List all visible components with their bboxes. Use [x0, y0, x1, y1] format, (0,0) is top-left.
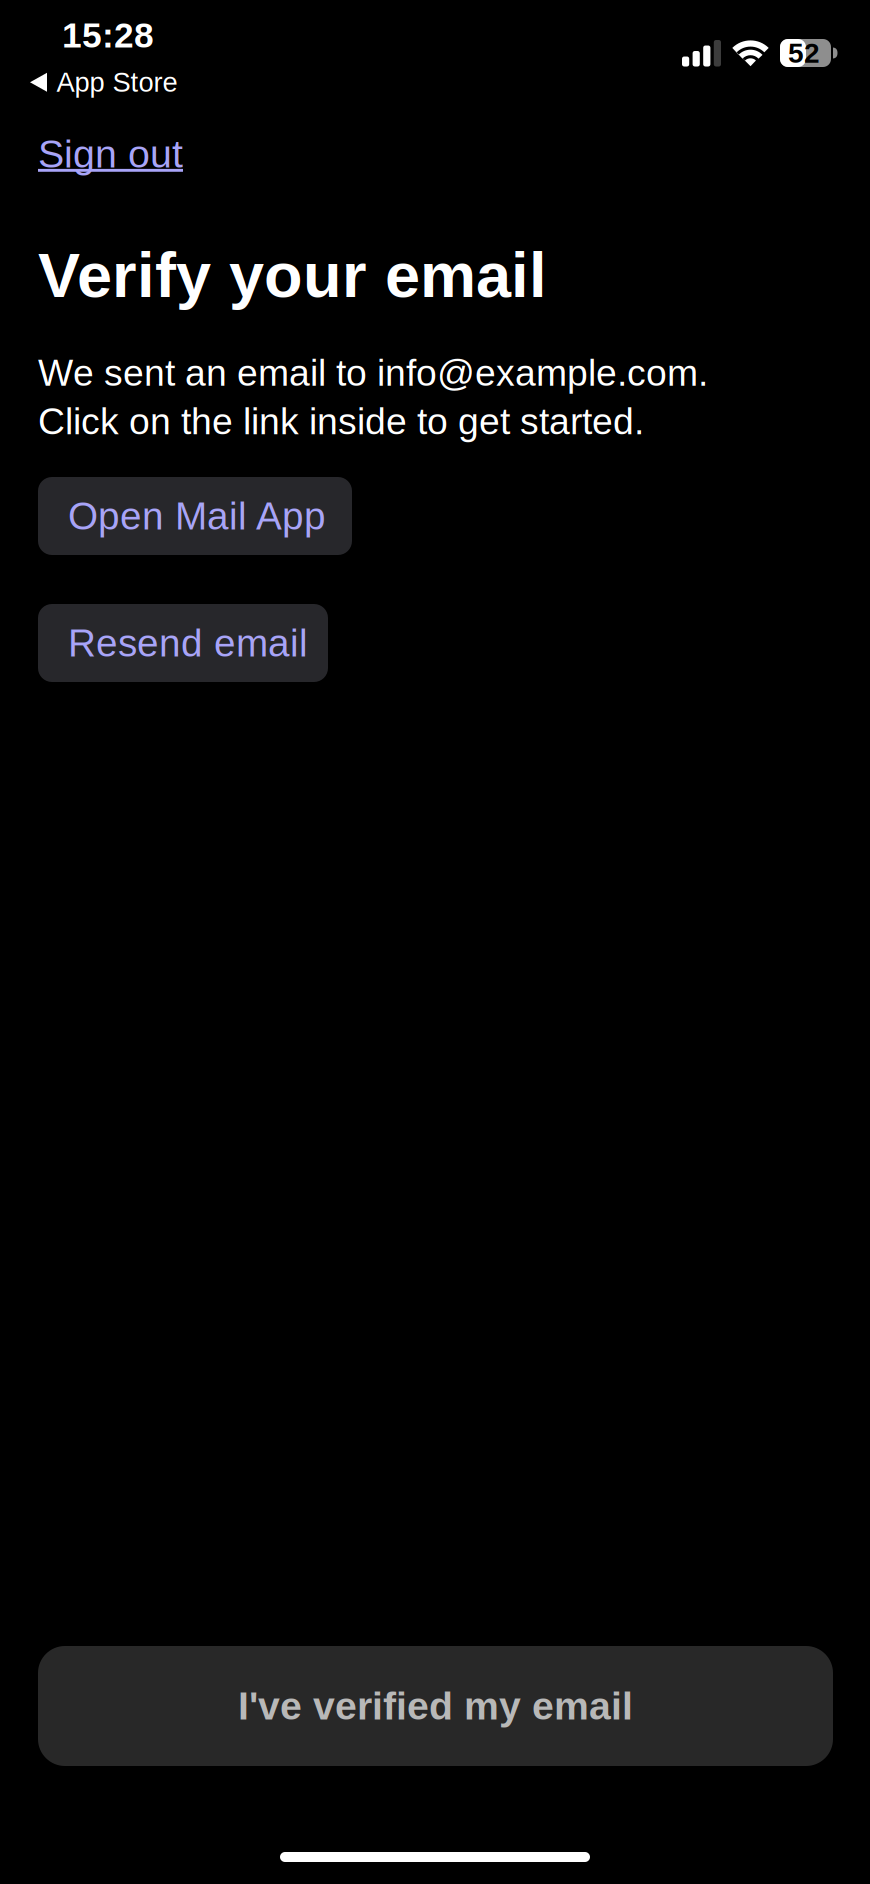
button[interactable]: App Store [30, 67, 177, 97]
staticText: I've verified my email [238, 1684, 633, 1728]
button[interactable]: I've verified my email [38, 1646, 833, 1766]
button[interactable]: Sign out [24, 118, 197, 190]
staticText: Verify your email [38, 240, 547, 310]
staticText: 52 [788, 37, 820, 69]
staticText: 15:28 [62, 15, 154, 55]
staticText: App Store [56, 67, 177, 97]
staticText: Sign out [38, 132, 183, 176]
button[interactable]: Resend email [38, 604, 328, 682]
button[interactable]: Open Mail App [38, 477, 352, 555]
staticText: Open Mail App [68, 494, 326, 538]
staticText: Resend email [68, 621, 308, 665]
staticText: We sent an email to info@example.com. Cl… [38, 352, 708, 442]
